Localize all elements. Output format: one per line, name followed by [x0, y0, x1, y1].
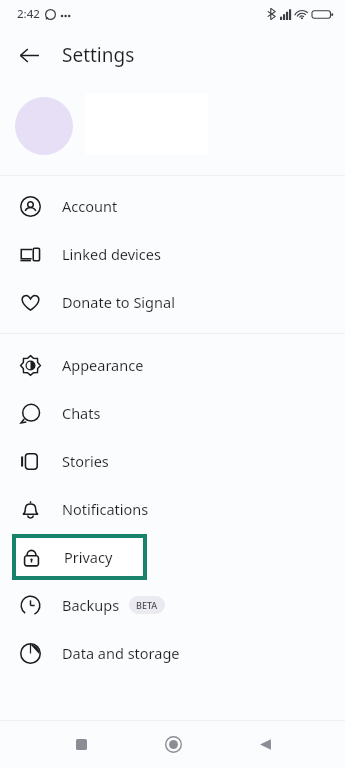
- button[interactable]: Appearance: [0, 341, 345, 389]
- staticText: Privacy: [64, 547, 113, 567]
- button[interactable]: Notifications: [0, 485, 345, 533]
- button[interactable]: Chats: [0, 389, 345, 437]
- staticText: Data and storage: [62, 643, 180, 663]
- button[interactable]: Home: [144, 721, 202, 768]
- staticText: Chats: [62, 403, 101, 423]
- button[interactable]: Backups: [0, 581, 345, 629]
- button[interactable]: Recent apps: [52, 721, 110, 768]
- staticText: Backups: [62, 595, 120, 615]
- staticText: Settings: [62, 42, 135, 68]
- button[interactable]: [0, 82, 345, 170]
- button[interactable]: Back: [236, 721, 294, 768]
- button[interactable]: Data and storage: [0, 629, 345, 677]
- staticText: Notifications: [62, 499, 149, 519]
- staticText: 2:42: [17, 6, 40, 22]
- button[interactable]: Donate to Signal: [0, 278, 345, 326]
- staticText: Linked devices: [62, 244, 161, 264]
- staticText: Account: [62, 196, 118, 216]
- button[interactable]: Linked devices: [0, 230, 345, 278]
- button[interactable]: Back: [8, 34, 50, 76]
- staticText: BETA: [136, 599, 158, 611]
- staticText: Stories: [62, 451, 109, 471]
- staticText: Donate to Signal: [62, 292, 175, 312]
- button[interactable]: Stories: [0, 437, 345, 485]
- button[interactable]: Privacy: [16, 538, 143, 576]
- button[interactable]: Account: [0, 182, 345, 230]
- staticText: Appearance: [62, 355, 144, 375]
